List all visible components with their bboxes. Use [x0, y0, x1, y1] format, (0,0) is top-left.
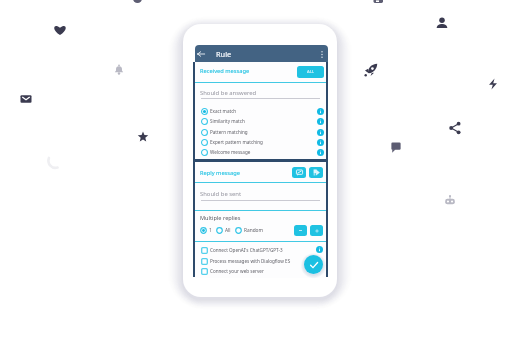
button[interactable]: Info	[316, 246, 323, 253]
button[interactable]: Random	[235, 227, 263, 234]
button[interactable]: Back	[195, 47, 208, 61]
staticText: Similarity match	[210, 118, 245, 124]
staticText: Process messages with Dialogflow ES	[210, 258, 291, 264]
staticText: Reply message	[200, 169, 240, 177]
staticText: Connect your web server	[210, 268, 264, 274]
staticText: Rule	[216, 49, 232, 59]
button[interactable]: More options	[317, 49, 327, 59]
button[interactable]: Process messages with Dialogflow ES	[201, 256, 324, 266]
button[interactable]: Info	[317, 139, 324, 146]
staticText: All	[225, 227, 231, 234]
button[interactable]: Connect OpenAI's ChatGPT/GPT-3	[201, 245, 324, 255]
button[interactable]: Increase	[310, 225, 323, 236]
staticText: Connect OpenAI's ChatGPT/GPT-3	[210, 247, 283, 253]
staticText: Expert pattern matching	[210, 139, 263, 145]
staticText: Exact match	[210, 108, 237, 114]
staticText: Should be sent	[200, 190, 242, 198]
button[interactable]: Expert pattern matching	[201, 137, 324, 147]
button[interactable]: Pattern matching	[201, 127, 324, 137]
button[interactable]: Save	[304, 255, 323, 274]
button[interactable]: Similarity match	[201, 116, 324, 126]
button[interactable]: Info	[317, 149, 324, 156]
staticText: 1	[209, 227, 212, 234]
button[interactable]: Exact match	[201, 106, 324, 116]
button[interactable]: Decrease	[294, 225, 307, 236]
staticText: ALL	[307, 69, 315, 75]
button[interactable]: Info	[317, 108, 324, 115]
button[interactable]: Connect your web server	[201, 266, 324, 276]
button[interactable]: 1	[200, 227, 212, 234]
button[interactable]: Insert image	[292, 167, 306, 178]
button[interactable]: Send	[309, 167, 323, 178]
button[interactable]: All	[216, 227, 231, 234]
staticText: Welcome message	[210, 149, 251, 155]
staticText: Should be answered	[200, 89, 257, 97]
button[interactable]: ALL	[297, 66, 324, 78]
button[interactable]: Info	[317, 118, 324, 125]
staticText: Multiple replies	[200, 214, 241, 222]
staticText: Pattern matching	[210, 129, 248, 135]
staticText: Received message	[200, 67, 250, 75]
button[interactable]: Welcome message	[201, 147, 324, 157]
button[interactable]: Info	[317, 129, 324, 136]
staticText: Random	[244, 227, 263, 234]
